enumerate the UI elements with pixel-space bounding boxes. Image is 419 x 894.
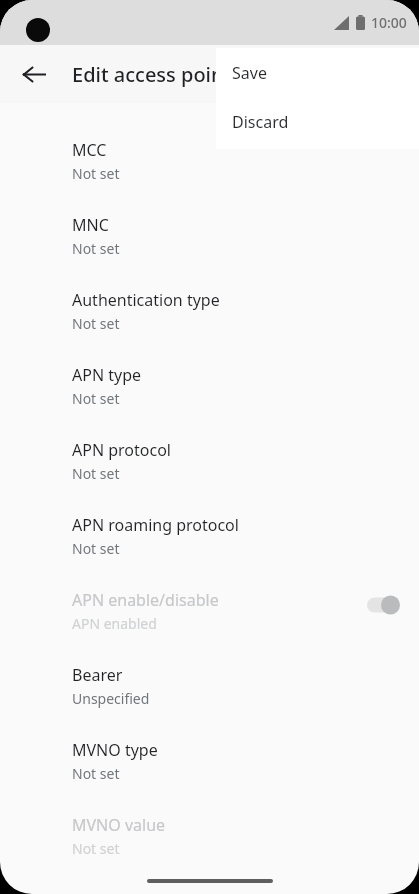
staticText: 10:00 — [371, 13, 407, 32]
staticText: Not set — [72, 764, 120, 783]
button[interactable]: MNC — [0, 211, 419, 286]
button[interactable]: APN roaming protocol — [0, 511, 419, 586]
staticText: MVNO type — [72, 739, 158, 761]
staticText: Not set — [72, 239, 120, 258]
staticText: Not set — [72, 164, 120, 183]
button[interactable]: APN protocol — [0, 436, 419, 511]
button[interactable]: APN type — [0, 361, 419, 436]
staticText: APN roaming protocol — [72, 514, 239, 536]
staticText: Not set — [72, 839, 120, 858]
staticText: Not set — [72, 539, 120, 558]
button[interactable]: APN enable/disable — [0, 586, 419, 661]
staticText: APN type — [72, 364, 142, 386]
staticText: MNC — [72, 214, 109, 236]
staticText: Discard — [232, 111, 289, 133]
button[interactable]: Bearer — [0, 661, 419, 736]
button[interactable]: MCC — [0, 136, 419, 211]
button[interactable]: Back — [9, 50, 57, 98]
staticText: MVNO value — [72, 814, 166, 836]
staticText: Save — [232, 62, 267, 84]
staticText: APN protocol — [72, 439, 171, 461]
staticText: Bearer — [72, 664, 123, 686]
button[interactable]: Save — [216, 48, 419, 97]
staticText: Authentication type — [72, 289, 220, 311]
staticText: Unspecified — [72, 689, 150, 708]
staticText: Edit access point — [72, 61, 232, 88]
button[interactable]: MVNO type — [0, 736, 419, 811]
staticText: Not set — [72, 314, 120, 333]
staticText: APN enabled — [72, 614, 157, 633]
staticText: Not set — [72, 464, 120, 483]
button[interactable]: MVNO value — [0, 811, 419, 886]
staticText: Not set — [72, 389, 120, 408]
staticText: MCC — [72, 139, 107, 161]
button[interactable]: Discard — [216, 97, 419, 146]
button[interactable]: APN enable/disable toggle — [365, 592, 405, 618]
button[interactable]: Authentication type — [0, 286, 419, 361]
staticText: APN enable/disable — [72, 589, 219, 611]
